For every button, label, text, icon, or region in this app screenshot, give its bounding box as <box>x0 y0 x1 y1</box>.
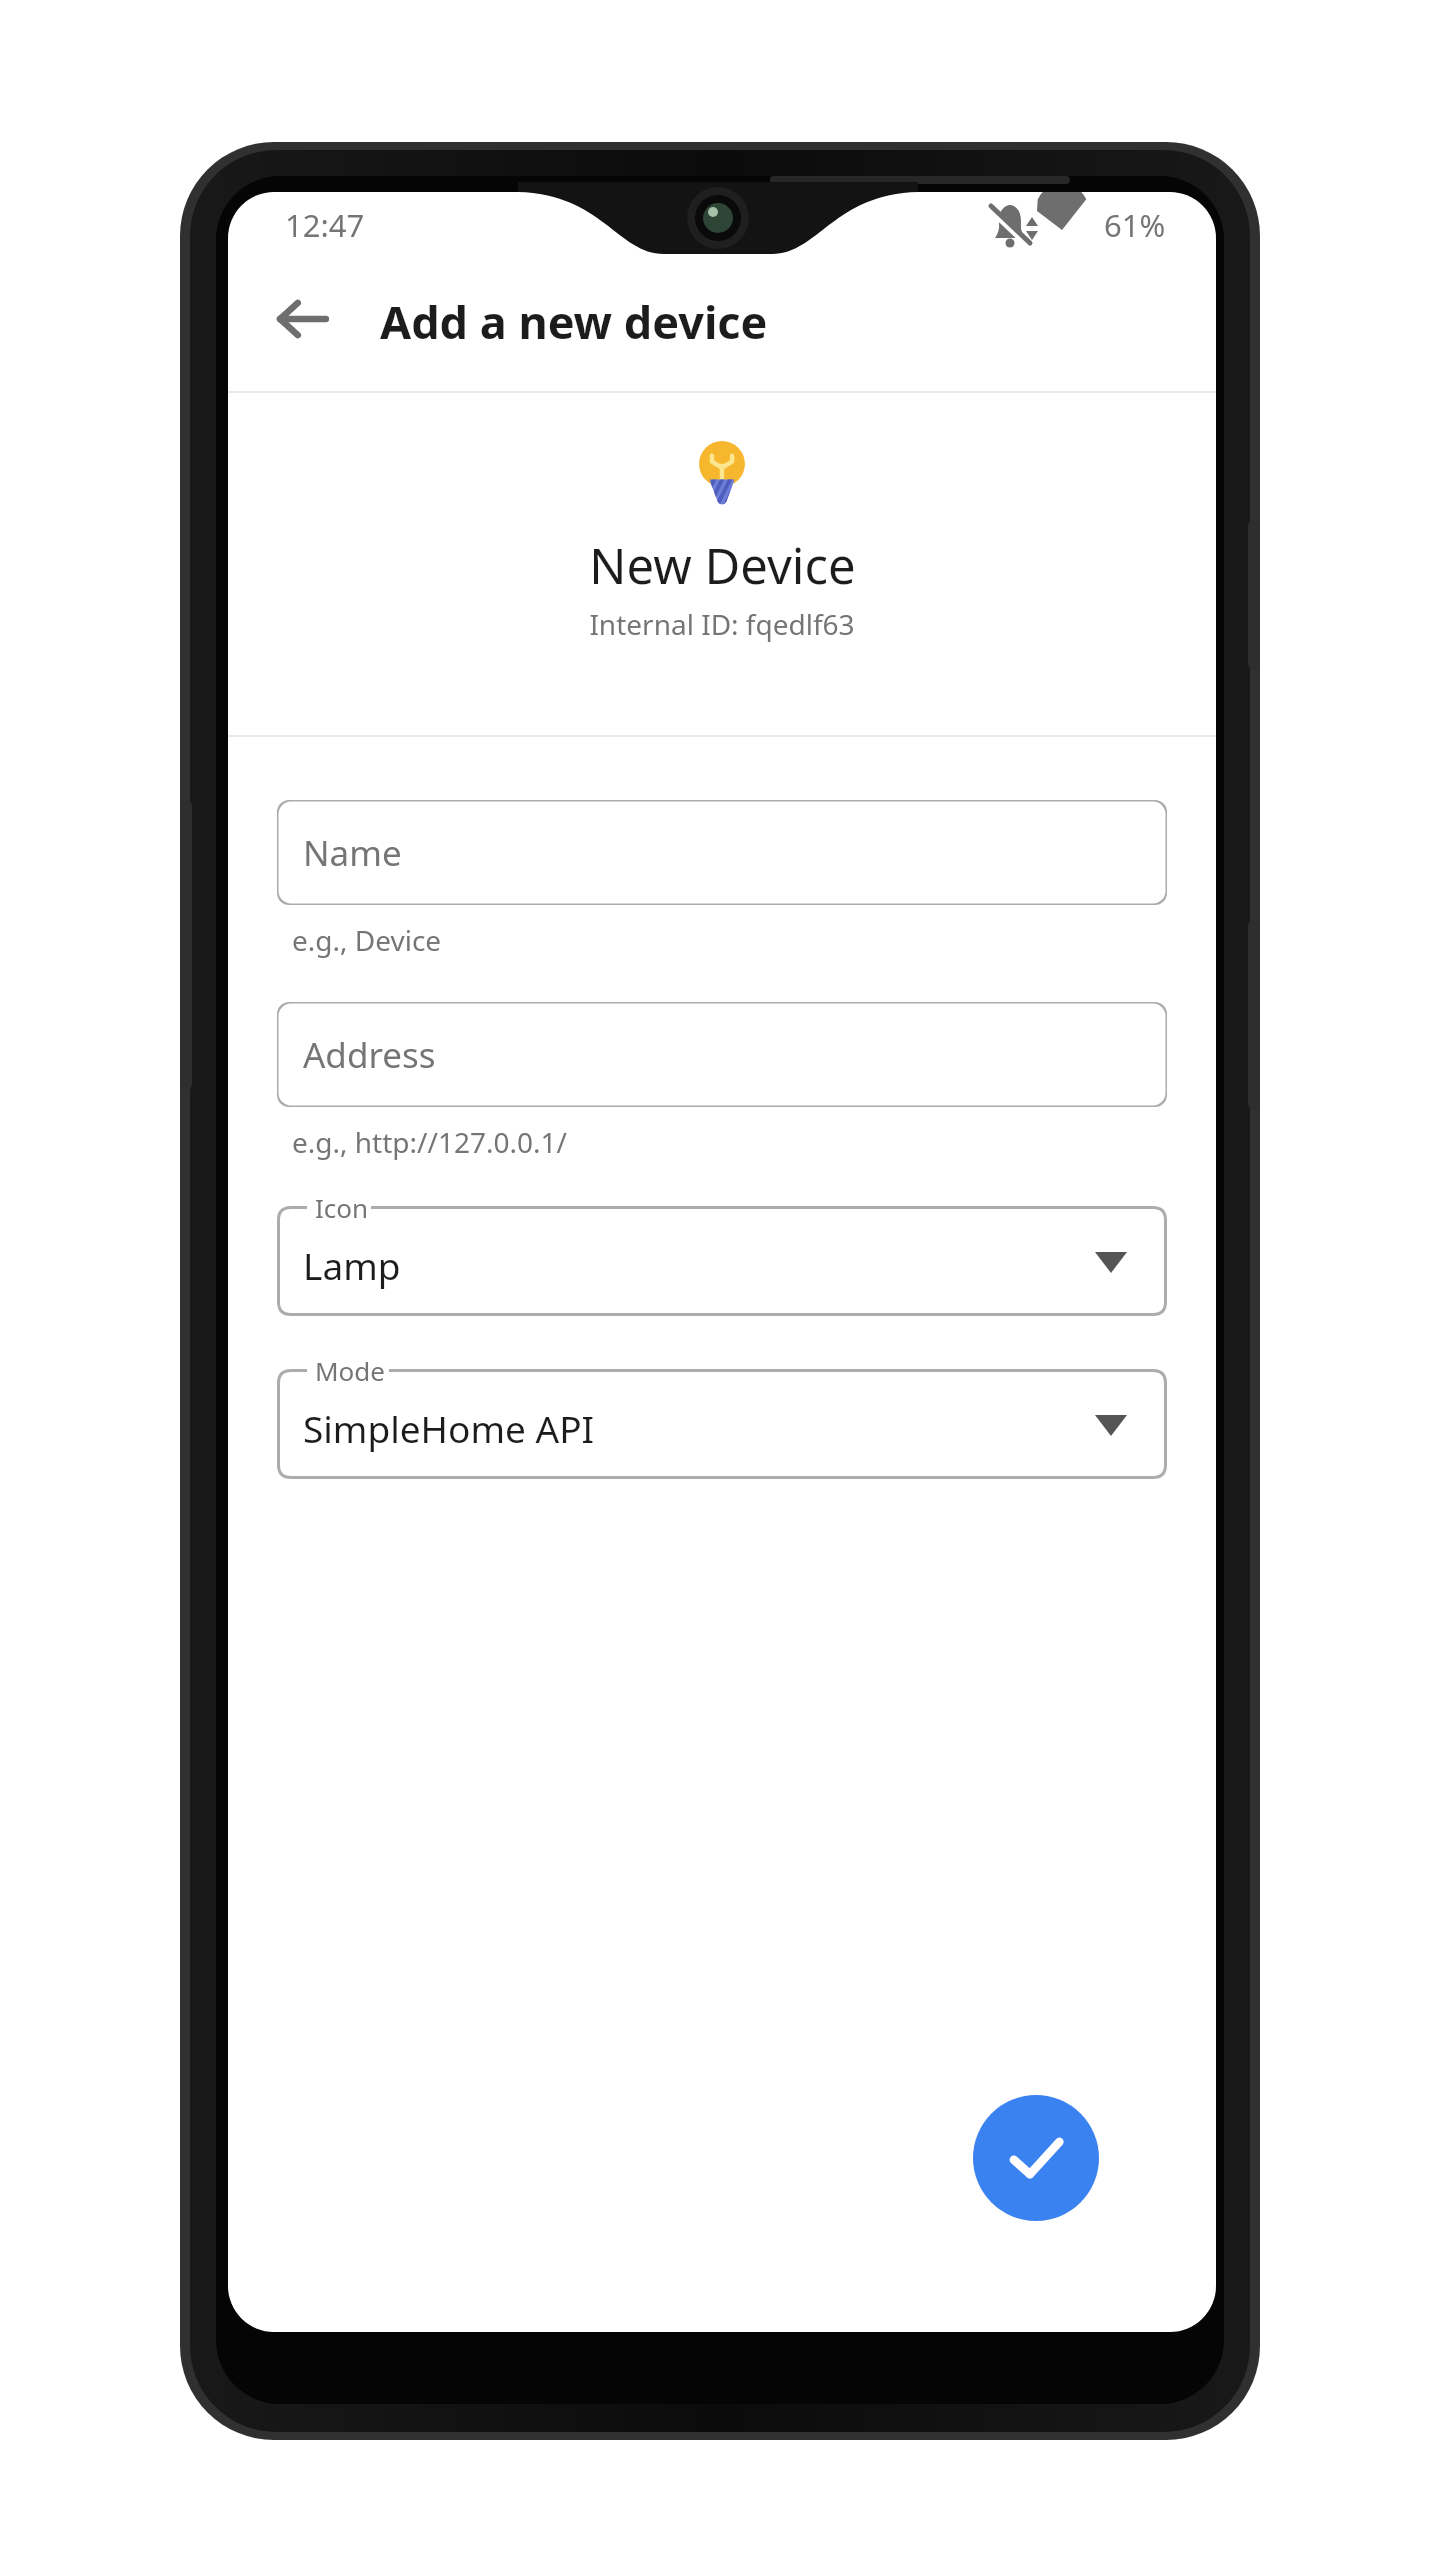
staticText: e.g., Device <box>292 921 442 959</box>
staticText: e.g., http://127.0.0.1/ <box>292 1123 567 1161</box>
staticText: New Device <box>589 532 856 599</box>
staticText: Add a new device <box>380 291 768 352</box>
staticText: Mode <box>315 1353 385 1388</box>
staticText: Address <box>303 1031 436 1079</box>
button[interactable]: Confirm <box>973 2095 1099 2221</box>
staticText: SimpleHome API <box>303 1403 595 1453</box>
staticText: Internal ID: fqedlf63 <box>589 605 855 643</box>
button[interactable]: Name <box>277 800 1167 905</box>
button[interactable]: Mode <box>277 1369 1167 1479</box>
button[interactable]: Address <box>277 1002 1167 1107</box>
button[interactable]: Back <box>254 270 352 368</box>
staticText: Lamp <box>303 1240 401 1290</box>
staticText: Icon <box>315 1190 369 1225</box>
staticText: 12:47 <box>285 204 365 246</box>
staticText: Name <box>303 829 402 877</box>
staticText: 61% <box>1104 204 1166 246</box>
button[interactable]: Icon <box>277 1206 1167 1316</box>
